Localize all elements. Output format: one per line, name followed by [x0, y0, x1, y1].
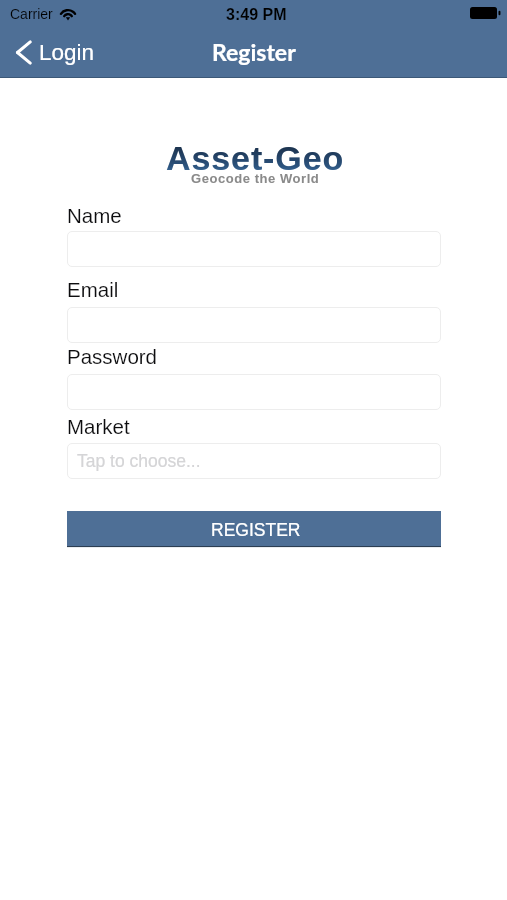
button[interactable]	[67, 231, 441, 267]
staticText: REGISTER	[211, 520, 301, 540]
staticText: Carrier	[10, 6, 53, 22]
staticText: Name	[67, 204, 122, 227]
button[interactable]	[67, 307, 441, 343]
button[interactable]: REGISTER	[67, 511, 441, 547]
button[interactable]: Tap to choose...	[67, 443, 441, 479]
staticText: Email	[67, 278, 119, 301]
staticText: Tap to choose...	[77, 451, 201, 471]
staticText: Login	[39, 40, 95, 65]
button[interactable]	[67, 374, 441, 410]
button[interactable]: Back	[8, 35, 109, 70]
staticText: 3:49 PM	[226, 6, 287, 24]
staticText: Market	[67, 415, 130, 438]
other: Back	[16, 41, 31, 64]
staticText: Password	[67, 345, 158, 368]
staticText: Register	[212, 38, 296, 66]
staticText: Geocode the World	[191, 171, 320, 186]
staticText: Asset-Geo	[166, 139, 345, 177]
